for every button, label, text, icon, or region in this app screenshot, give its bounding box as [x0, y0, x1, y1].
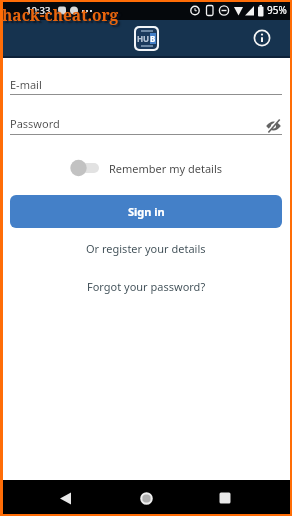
staticText: E-mail [10, 77, 42, 92]
button[interactable]: Or register your details [10, 241, 282, 256]
staticText: Password [10, 116, 60, 131]
staticText: HU [137, 33, 150, 44]
button[interactable] [140, 492, 153, 505]
button[interactable] [253, 29, 271, 47]
staticText: 95% [267, 3, 287, 17]
button[interactable]: Sign in [10, 195, 282, 228]
button[interactable]: Remember my details [10, 159, 282, 177]
staticText: Remember my details [109, 161, 223, 176]
staticText: hack-cheat.org [2, 4, 119, 25]
button[interactable] [265, 119, 282, 133]
button[interactable] [59, 492, 72, 505]
button[interactable] [219, 492, 231, 504]
button[interactable]: Forgot your password? [10, 279, 282, 294]
staticText: B [150, 33, 156, 44]
staticText: 10:33 [26, 4, 51, 17]
staticText: Sign in [128, 204, 165, 219]
staticText: Forgot your password? [87, 279, 206, 294]
staticText: Or register your details [86, 241, 206, 256]
button[interactable]: HU [136, 28, 157, 49]
